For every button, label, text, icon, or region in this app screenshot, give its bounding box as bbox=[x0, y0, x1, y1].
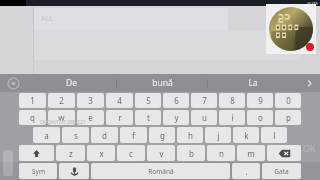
button[interactable]: f bbox=[120, 127, 147, 143]
staticText: Gata bbox=[274, 167, 289, 176]
staticText: l bbox=[273, 130, 276, 141]
staticText: k bbox=[244, 130, 249, 141]
button[interactable]: h bbox=[177, 127, 203, 143]
button[interactable] bbox=[267, 145, 301, 161]
button[interactable]: j bbox=[205, 127, 231, 143]
button[interactable]: i bbox=[219, 110, 245, 125]
button[interactable]: u bbox=[191, 110, 217, 125]
staticText: q bbox=[30, 112, 35, 123]
staticText: d bbox=[102, 130, 107, 141]
staticText: p bbox=[286, 112, 291, 123]
staticText: w bbox=[58, 112, 65, 123]
button[interactable]: Video preview bbox=[266, 4, 316, 54]
button[interactable]: 9 bbox=[247, 93, 273, 108]
button[interactable]: g bbox=[149, 127, 175, 143]
button[interactable]: 5 bbox=[135, 93, 161, 108]
button[interactable]: e bbox=[77, 110, 104, 125]
staticText: 7 bbox=[202, 95, 207, 106]
staticText: i bbox=[231, 112, 234, 123]
button[interactable]: t bbox=[135, 110, 161, 125]
button[interactable]: 7 bbox=[191, 93, 217, 108]
staticText: a bbox=[44, 130, 49, 141]
staticText: 4 bbox=[117, 95, 122, 106]
button[interactable]: y bbox=[163, 110, 189, 125]
button[interactable]: p bbox=[275, 110, 301, 125]
button[interactable]: 4 bbox=[106, 93, 133, 108]
staticText: De bbox=[66, 77, 77, 89]
button[interactable]: La bbox=[208, 74, 298, 92]
button[interactable]: More suggestions bbox=[298, 74, 320, 92]
button[interactable]: z bbox=[56, 145, 85, 161]
staticText: t bbox=[147, 112, 150, 123]
staticText: f bbox=[132, 130, 135, 141]
button[interactable]: n bbox=[207, 145, 235, 161]
staticText: b bbox=[189, 148, 194, 159]
button[interactable]: 3 bbox=[77, 93, 104, 108]
staticText: g bbox=[160, 130, 165, 141]
staticText: s bbox=[74, 130, 78, 141]
button[interactable]: o bbox=[247, 110, 273, 125]
staticText: Sym bbox=[32, 167, 45, 176]
button[interactable]: bună bbox=[117, 74, 207, 92]
button[interactable]: 2 bbox=[48, 93, 75, 108]
staticText: 8 bbox=[230, 95, 235, 106]
button[interactable]: r bbox=[106, 110, 133, 125]
staticText: 40 FPS bbox=[307, 1, 318, 6]
staticText: 2 bbox=[59, 95, 64, 106]
button[interactable]: x bbox=[87, 145, 115, 161]
button[interactable]: s bbox=[62, 127, 89, 143]
button[interactable]: w bbox=[48, 110, 75, 125]
staticText: 5 bbox=[146, 95, 151, 106]
staticText: u bbox=[202, 112, 207, 123]
staticText: 3 bbox=[88, 95, 93, 106]
staticText: j bbox=[217, 130, 220, 141]
staticText: 9 bbox=[258, 95, 263, 106]
staticText: h bbox=[188, 130, 193, 141]
staticText: Română bbox=[148, 167, 174, 176]
staticText: e bbox=[88, 112, 93, 123]
button[interactable]: d bbox=[91, 127, 118, 143]
button[interactable]: l bbox=[261, 127, 287, 143]
staticText: y bbox=[174, 112, 179, 123]
staticText: 0 bbox=[286, 95, 291, 106]
button[interactable]: Română bbox=[91, 163, 230, 179]
button[interactable]: a bbox=[33, 127, 60, 143]
button[interactable]: m bbox=[237, 145, 265, 161]
button[interactable]: v bbox=[147, 145, 175, 161]
staticText: m bbox=[247, 148, 255, 159]
staticText: r bbox=[118, 112, 122, 123]
button[interactable]: De bbox=[26, 74, 116, 92]
staticText: v bbox=[159, 148, 164, 159]
button[interactable]: q bbox=[19, 110, 46, 125]
staticText: 1 bbox=[30, 95, 35, 106]
staticText: x bbox=[99, 148, 104, 159]
staticText: OK bbox=[303, 142, 316, 154]
button[interactable]: 1 bbox=[19, 93, 46, 108]
staticText: La bbox=[248, 77, 258, 89]
button[interactable]: Sym bbox=[19, 163, 57, 179]
staticText: c bbox=[129, 148, 133, 159]
staticText: n bbox=[219, 148, 224, 159]
staticText: OPERATIVE 288 221 bbox=[40, 119, 86, 126]
button[interactable]: . bbox=[232, 163, 260, 179]
staticText: bună bbox=[152, 77, 173, 89]
button[interactable] bbox=[59, 163, 89, 179]
staticText: . bbox=[245, 166, 248, 177]
button[interactable]: c bbox=[117, 145, 145, 161]
staticText: o bbox=[258, 112, 263, 123]
button[interactable]: Gata bbox=[262, 163, 301, 179]
button[interactable]: k bbox=[233, 127, 259, 143]
staticText: ALL bbox=[41, 14, 53, 24]
button[interactable]: 0 bbox=[275, 93, 301, 108]
button[interactable] bbox=[19, 145, 54, 161]
button[interactable]: 6 bbox=[163, 93, 189, 108]
button[interactable]: b bbox=[177, 145, 205, 161]
staticText: 6 bbox=[174, 95, 179, 106]
button[interactable]: 8 bbox=[219, 93, 245, 108]
staticText: z bbox=[69, 148, 73, 159]
button[interactable]: Voice input settings bbox=[0, 74, 26, 92]
